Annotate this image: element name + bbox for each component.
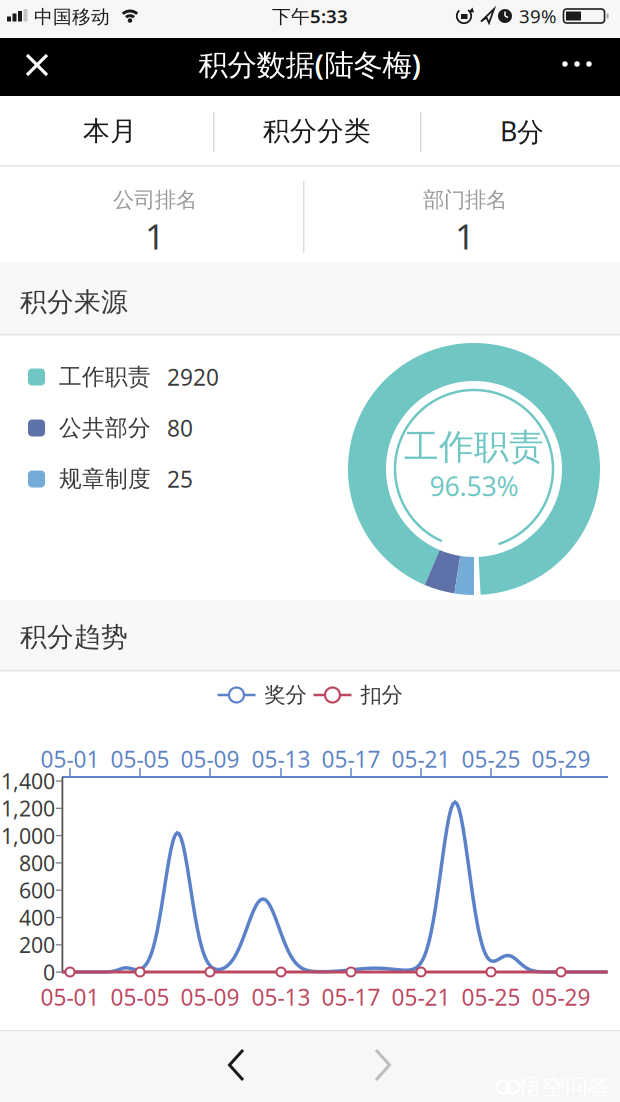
staticText: 0 xyxy=(43,958,55,986)
staticText: 下午5:33 xyxy=(272,4,348,28)
staticText: 规章制度 xyxy=(59,465,151,493)
staticText: 05-05 xyxy=(110,982,169,1012)
button[interactable] xyxy=(212,1041,260,1089)
button[interactable]: B分 xyxy=(424,96,620,166)
staticText: 05-05 xyxy=(110,744,169,774)
staticText: 1 xyxy=(455,213,475,259)
staticText: 05-13 xyxy=(251,982,310,1012)
staticText: 05-13 xyxy=(251,744,310,774)
staticText: 05-01 xyxy=(40,982,99,1012)
staticText: 公司排名 xyxy=(113,187,197,213)
staticText: 2920 xyxy=(167,362,219,392)
staticText: 工作职责 xyxy=(404,426,544,468)
staticText: 400 xyxy=(19,903,55,932)
button[interactable] xyxy=(11,39,63,91)
button[interactable] xyxy=(551,42,603,86)
button[interactable]: 本月 xyxy=(7,96,213,166)
staticText: B分 xyxy=(500,113,544,149)
staticText: 1 xyxy=(145,213,165,259)
staticText: 奖分 xyxy=(264,682,306,708)
staticText: 05-17 xyxy=(321,982,380,1012)
staticText: 05-21 xyxy=(391,744,450,774)
staticText: 05-25 xyxy=(461,982,520,1012)
button[interactable]: 工作职责 xyxy=(28,358,318,396)
staticText: 积分分类 xyxy=(263,115,371,147)
staticText: 800 xyxy=(19,849,55,877)
staticText: 工作职责 xyxy=(59,363,151,391)
staticText: 1,000 xyxy=(1,821,55,850)
staticText: 05-21 xyxy=(391,982,450,1012)
staticText: 积分来源 xyxy=(20,286,128,318)
staticText: 05-17 xyxy=(321,744,380,774)
staticText: 05-25 xyxy=(461,744,520,774)
staticText: 积分趋势 xyxy=(20,621,128,653)
button[interactable]: 公共部分 xyxy=(28,409,318,447)
staticText: 05-29 xyxy=(531,744,590,774)
button[interactable]: 规章制度 xyxy=(28,460,318,498)
staticText: 本月 xyxy=(83,115,137,147)
staticText: 05-01 xyxy=(40,744,99,774)
button[interactable]: 扣分 xyxy=(313,680,402,710)
staticText: 600 xyxy=(19,876,55,904)
button[interactable]: 奖分 xyxy=(217,680,306,710)
staticText: 39% xyxy=(519,4,557,28)
staticText: 25 xyxy=(167,464,193,494)
staticText: 05-29 xyxy=(531,982,590,1012)
staticText: 96.53% xyxy=(429,468,518,504)
staticText: 05-09 xyxy=(180,982,239,1012)
staticText: 部门排名 xyxy=(423,187,507,213)
staticText: 中国移动 xyxy=(34,5,110,28)
staticText: 05-09 xyxy=(180,744,239,774)
staticText: 80 xyxy=(167,413,193,443)
staticText: 200 xyxy=(19,931,55,959)
staticText: 1,400 xyxy=(1,767,55,795)
staticText: 积分数据(陆冬梅) xyxy=(198,44,421,83)
button[interactable]: 积分分类 xyxy=(217,96,417,166)
staticText: 1,200 xyxy=(1,794,55,822)
staticText: 公共部分 xyxy=(59,414,151,442)
button[interactable] xyxy=(359,1041,407,1089)
staticText: 扣分 xyxy=(360,682,402,708)
